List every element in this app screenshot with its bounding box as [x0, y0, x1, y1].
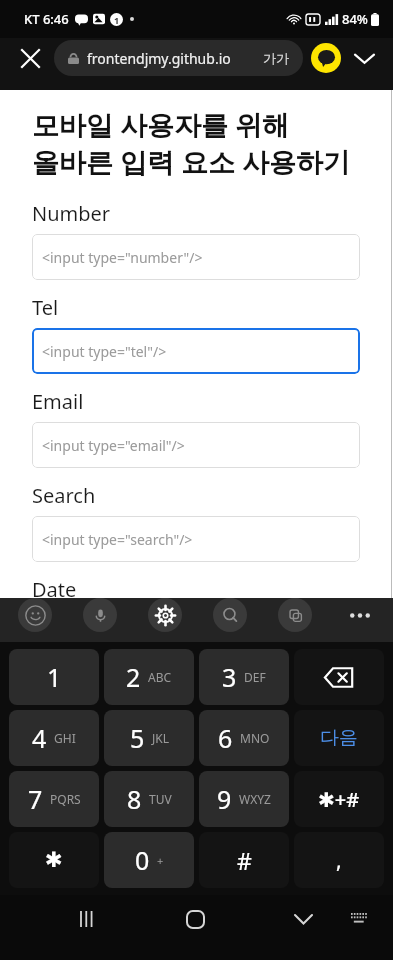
staticText: Date — [32, 576, 77, 598]
button[interactable]: # — [199, 832, 289, 888]
staticText: 7 — [28, 782, 43, 816]
staticText: 5 — [130, 721, 145, 755]
staticText: ✱ — [45, 848, 63, 872]
button[interactable]: Search — [213, 598, 247, 632]
staticText: 3 — [222, 660, 237, 694]
button[interactable]: 4 — [9, 710, 99, 766]
button[interactable]: 6 — [199, 710, 289, 766]
button[interactable]: 1 — [9, 649, 99, 705]
staticText: GHI — [54, 730, 76, 746]
staticText: <input type="email"/> — [42, 436, 185, 455]
staticText: <input type="tel"/> — [42, 342, 167, 361]
staticText: 가가 — [263, 50, 289, 66]
staticText: TUV — [149, 791, 172, 807]
staticText: 다음 — [320, 726, 358, 750]
staticText: 모바일 사용자를 위해 — [32, 106, 290, 143]
button[interactable]: Emoji — [18, 598, 52, 632]
button[interactable]: ✱+# — [294, 771, 384, 827]
staticText: MNO — [240, 730, 270, 746]
button[interactable]: Voice input — [83, 598, 117, 632]
staticText: ✱+# — [318, 786, 360, 813]
staticText: Tel — [32, 294, 59, 321]
staticText: + — [157, 853, 164, 868]
staticText: <input type="search"/> — [42, 530, 193, 549]
staticText: 2 — [126, 660, 141, 694]
button[interactable]: 다음 — [294, 710, 384, 766]
staticText: Search — [32, 482, 96, 509]
staticText: , — [336, 846, 342, 875]
button[interactable]: <input type="number"/> — [32, 234, 360, 280]
button[interactable]: 9 — [199, 771, 289, 827]
staticText: KT 6:46 — [24, 10, 69, 28]
staticText: <input type="number"/> — [42, 248, 203, 267]
staticText: WXYZ — [239, 791, 271, 807]
button[interactable]: Settings — [148, 598, 182, 632]
staticText: Email — [32, 388, 84, 415]
button[interactable]: KakaoTalk — [311, 43, 341, 73]
staticText: 1 — [47, 660, 62, 694]
staticText: ABC — [148, 669, 172, 685]
button[interactable]: , — [294, 832, 384, 888]
staticText: DEF — [244, 669, 266, 685]
staticText: 9 — [217, 782, 232, 816]
staticText: 4 — [32, 721, 47, 755]
button[interactable]: 2 — [104, 649, 194, 705]
button[interactable]: Change keyboard — [337, 897, 381, 941]
button[interactable]: More — [345, 39, 383, 77]
staticText: # — [237, 845, 252, 876]
button[interactable]: <input type="tel"/> — [32, 328, 360, 374]
button[interactable]: Close — [10, 38, 50, 78]
button[interactable]: Backspace — [294, 649, 384, 705]
button[interactable]: 5 — [104, 710, 194, 766]
staticText: 84% — [342, 10, 368, 28]
button[interactable]: <input type="email"/> — [32, 422, 360, 468]
button[interactable]: 0 — [104, 832, 194, 888]
staticText: 0 — [135, 843, 150, 877]
staticText: 6 — [218, 721, 233, 755]
staticText: frontendjmy.github.io — [87, 49, 231, 68]
button[interactable]: Hide keyboard — [279, 895, 327, 943]
staticText: 8 — [127, 782, 142, 816]
button[interactable]: 7 — [9, 771, 99, 827]
staticText: Number — [32, 200, 111, 227]
button[interactable]: 3 — [199, 649, 289, 705]
button[interactable]: Translate — [278, 598, 312, 632]
button[interactable]: ✱ — [9, 832, 99, 888]
button[interactable]: 8 — [104, 771, 194, 827]
staticText: 올바른 입력 요소 사용하기 — [32, 143, 351, 180]
button[interactable]: Home — [171, 895, 219, 943]
button[interactable]: Recents — [64, 895, 112, 943]
button[interactable]: frontendjmy.github.io — [54, 40, 303, 76]
staticText: JKL — [152, 730, 169, 746]
button[interactable]: More options — [343, 598, 377, 632]
staticText: 1 — [114, 14, 120, 26]
button[interactable]: <input type="search"/> — [32, 516, 360, 562]
staticText: PQRS — [50, 791, 81, 807]
